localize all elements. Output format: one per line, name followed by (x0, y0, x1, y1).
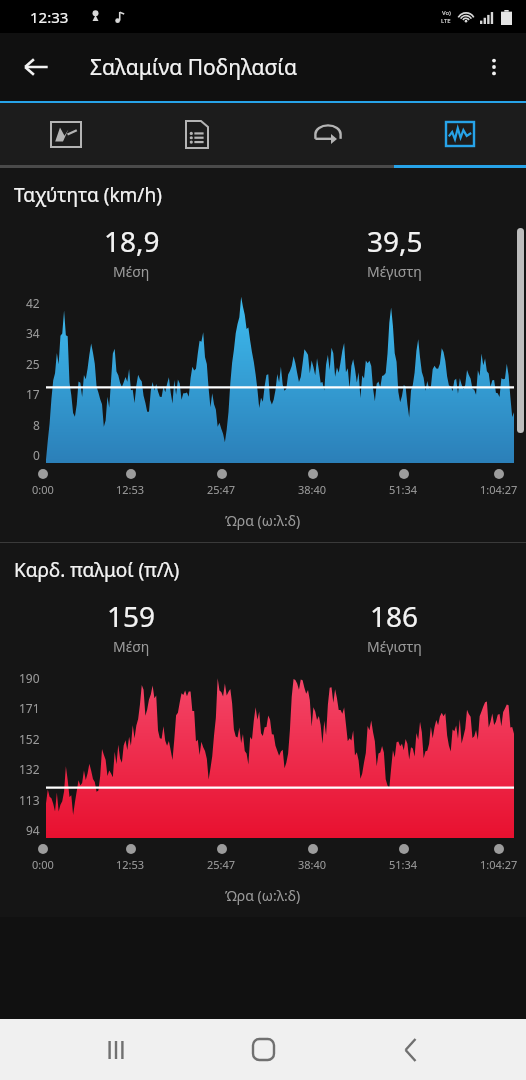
button[interactable]: More options (470, 43, 518, 91)
staticText: 38:40 (298, 857, 327, 872)
staticText: 152 (19, 731, 40, 747)
button[interactable]: Recents (84, 1019, 148, 1080)
staticText: 113 (19, 792, 40, 808)
button[interactable]: Ταχύτητα (km/h) (0, 168, 526, 542)
button[interactable]: Back (10, 41, 62, 93)
staticText: Μέση (113, 262, 150, 281)
staticText: 1:04:27 (480, 857, 518, 872)
staticText: 25 (26, 356, 40, 372)
staticText: 190 (19, 670, 40, 686)
button[interactable]: Back (379, 1019, 443, 1080)
staticText: 0:00 (32, 482, 54, 497)
staticText: LTE (441, 17, 451, 25)
staticText: Μέση (113, 637, 150, 656)
staticText: 12:53 (116, 857, 145, 872)
staticText: Ώρα (ω:λ:δ) (225, 886, 301, 905)
button[interactable]: Καρδ. παλμοί (π/λ) (0, 543, 526, 917)
staticText: Μέγιστη (367, 637, 422, 656)
staticText: Ταχύτητα (km/h) (14, 182, 162, 208)
staticText: 8 (33, 417, 40, 433)
staticText: 25:47 (207, 482, 236, 497)
button[interactable]: Laps (262, 103, 394, 165)
button[interactable]: Graphs (394, 103, 526, 165)
button[interactable]: Map (0, 103, 131, 165)
staticText: 38:40 (298, 482, 327, 497)
staticText: 12:53 (116, 482, 145, 497)
button[interactable]: Details (131, 103, 262, 165)
staticText: Ώρα (ω:λ:δ) (225, 511, 301, 530)
staticText: 0:00 (32, 857, 54, 872)
staticText: 39,5 (367, 222, 423, 260)
staticText: 1:04:27 (480, 482, 518, 497)
staticText: 17 (26, 386, 40, 402)
staticText: 34 (26, 325, 40, 341)
staticText: Καρδ. παλμοί (π/λ) (14, 557, 180, 583)
staticText: 51:34 (389, 857, 418, 872)
staticText: 94 (26, 822, 40, 838)
staticText: 18,9 (104, 222, 160, 260)
staticText: 25:47 (207, 857, 236, 872)
staticText: Μέγιστη (367, 262, 422, 281)
staticText: 51:34 (389, 482, 418, 497)
staticText: 42 (26, 295, 40, 311)
staticText: 159 (107, 597, 156, 635)
staticText: 171 (19, 700, 40, 716)
staticText: Σαλαμίνα Ποδηλασία (90, 53, 297, 82)
staticText: 0 (33, 447, 40, 463)
staticText: 12:33 (30, 7, 69, 27)
staticText: 132 (19, 761, 40, 777)
staticText: 186 (370, 597, 419, 635)
staticText: Vo) (442, 9, 451, 17)
button[interactable]: Home (231, 1019, 295, 1080)
